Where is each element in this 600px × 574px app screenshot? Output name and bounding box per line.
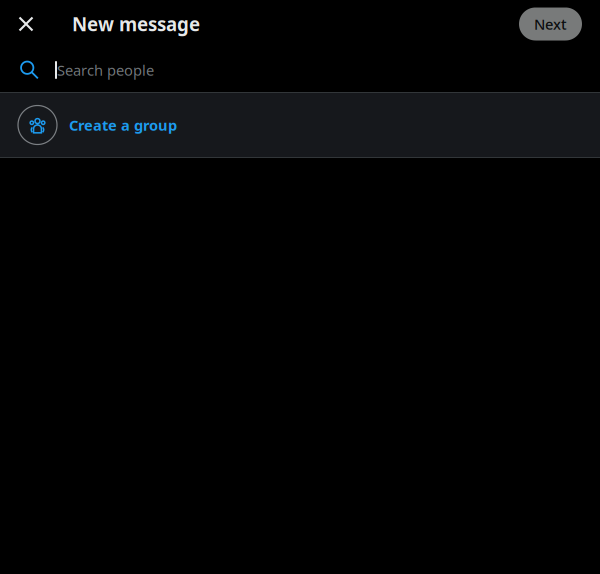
button[interactable]: Close bbox=[0, 0, 52, 48]
staticText: Create a group bbox=[69, 115, 177, 135]
staticText: Search people bbox=[57, 60, 154, 80]
staticText: Next bbox=[534, 14, 567, 34]
button[interactable]: Create a group bbox=[0, 93, 600, 157]
staticText: New message bbox=[72, 12, 200, 36]
button[interactable]: Search people bbox=[0, 48, 600, 92]
button[interactable]: Next bbox=[519, 7, 582, 40]
